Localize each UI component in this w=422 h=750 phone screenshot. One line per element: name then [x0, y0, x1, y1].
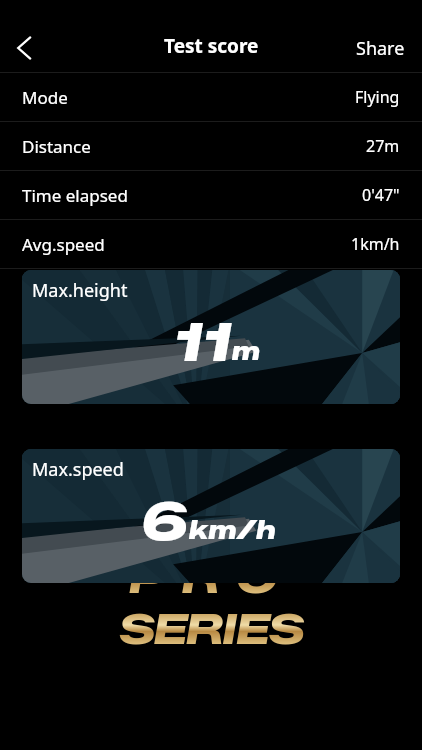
staticText: Flying [355, 86, 400, 108]
button[interactable]: Mode [0, 73, 422, 122]
staticText: 6 [141, 489, 189, 553]
staticText: km/h [189, 514, 276, 546]
button[interactable]: Avg.speed [0, 220, 422, 269]
staticText: SERIES [119, 604, 304, 654]
staticText: Distance [22, 135, 91, 158]
button[interactable]: Distance [0, 122, 422, 171]
staticText: Test score [164, 33, 259, 59]
staticText: 1km/h [351, 233, 400, 255]
staticText: 0'47" [362, 184, 400, 206]
staticText: Share [356, 36, 405, 61]
staticText: Max.speed [32, 457, 124, 482]
button[interactable]: Max.speed [22, 449, 400, 583]
staticText: PRO [129, 553, 294, 603]
button[interactable]: Share [334, 24, 422, 72]
button[interactable]: Time elapsed [0, 171, 422, 220]
staticText: 27m [366, 135, 400, 157]
button[interactable]: Back [0, 24, 48, 72]
staticText: Mode [22, 86, 68, 109]
staticText: m [232, 335, 260, 367]
staticText: 11 [174, 310, 232, 374]
staticText: Max.height [32, 278, 128, 303]
staticText: Avg.speed [22, 233, 105, 256]
button[interactable]: Max.height [22, 270, 400, 404]
staticText: Time elapsed [22, 184, 128, 207]
